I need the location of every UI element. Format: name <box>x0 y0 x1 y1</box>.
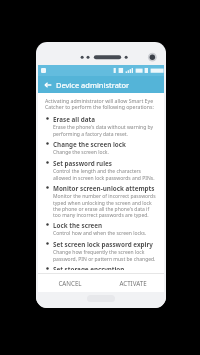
button[interactable]: ACTIVATE <box>101 274 164 292</box>
button[interactable]: Set storage encryption <box>38 265 164 273</box>
staticText: Set screen lock password expiry <box>53 240 153 249</box>
button[interactable]: Change the screen lock <box>38 140 164 159</box>
button[interactable]: Erase all data <box>38 115 164 140</box>
staticText: ACTIVATE <box>119 279 147 287</box>
staticText: Monitor screen-unlock attempts <box>53 184 155 193</box>
button[interactable]: Set password rules <box>38 159 164 184</box>
button[interactable]: Lock the screen <box>38 221 164 240</box>
button[interactable]: Monitor screen-unlock attempts <box>38 184 164 221</box>
staticText: Change how frequently the screen lock pa… <box>53 249 157 262</box>
staticText: Erase the phone's data without warning b… <box>53 124 157 137</box>
staticText: Lock the screen <box>53 221 103 230</box>
staticText: Activating administrator will allow Smar… <box>45 97 157 111</box>
staticText: Control the length and the characters al… <box>53 168 157 181</box>
staticText: Control how and when the screen locks. <box>53 230 147 237</box>
staticText: Erase all data <box>53 115 95 124</box>
button[interactable]: Set screen lock password expiry <box>38 240 164 265</box>
staticText: Set storage encryption <box>53 265 125 270</box>
staticText: CANCEL <box>58 279 82 287</box>
button[interactable]: Back <box>41 78 54 91</box>
staticText: Set password rules <box>53 159 113 168</box>
staticText: Monitor the number of incorrect password… <box>53 193 157 218</box>
button[interactable]: CANCEL <box>38 274 101 292</box>
staticText: Device administrator <box>56 80 130 90</box>
staticText: Change the screen lock <box>53 140 126 149</box>
staticText: Change the screen lock. <box>53 149 109 156</box>
